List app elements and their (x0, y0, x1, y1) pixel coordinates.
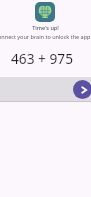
staticText: Time's up! (32, 24, 59, 31)
staticText: 463 + 975 (11, 49, 73, 68)
button[interactable]: Answer (0, 77, 91, 102)
staticText: Connect your brain to unlock the app (0, 33, 91, 40)
button[interactable]: Submit answer (73, 80, 91, 99)
other: App icon (35, 2, 55, 22)
